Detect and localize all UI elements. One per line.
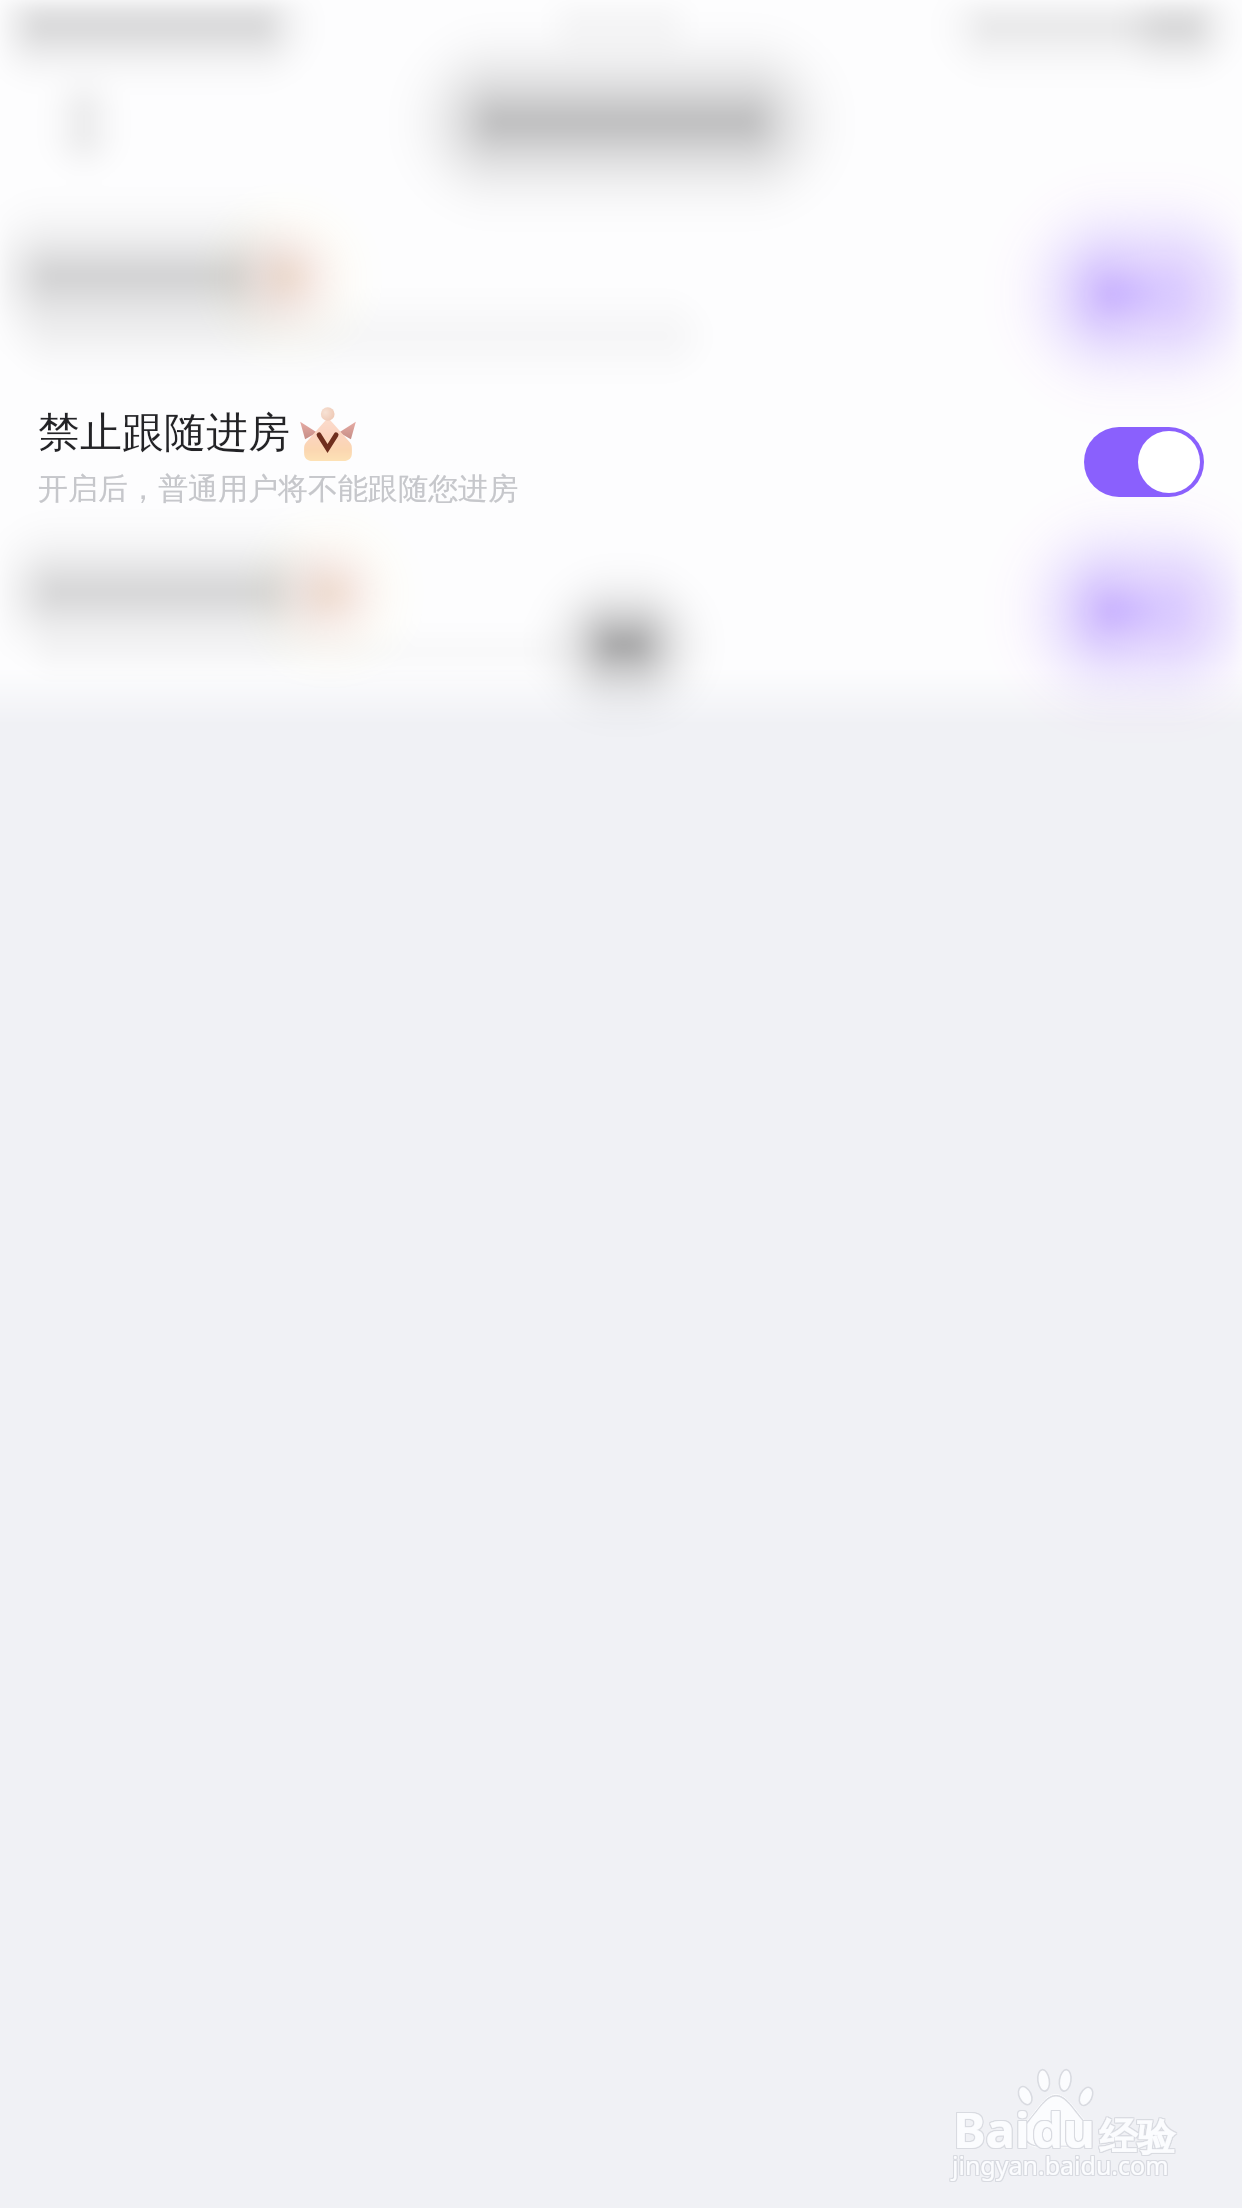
staticText: 经验 (1099, 2112, 1175, 2160)
staticText: Bai (953, 2097, 1030, 2164)
staticText: jingyan.baidu.com (953, 2148, 1170, 2182)
staticText: du (1032, 2097, 1095, 2164)
staticText: 经验 (1099, 2114, 1175, 2162)
staticText: 经验 (1100, 2113, 1176, 2161)
staticText: 禁止跟随进房 (38, 407, 290, 460)
staticText: Bai (952, 2096, 1029, 2163)
staticText: jingyan.baidu.com (952, 2149, 1169, 2183)
staticText: du (1032, 2096, 1095, 2163)
staticText: Bai (954, 2095, 1031, 2162)
staticText: 开启后，普通用户将不能跟随您进房 (38, 470, 518, 508)
staticText: Bai (952, 2095, 1029, 2162)
staticText: jingyan.baidu.com (953, 2149, 1170, 2183)
staticText: 经验 (1098, 2113, 1174, 2161)
staticText: du (1031, 2096, 1094, 2163)
button[interactable]: 禁止跟随进房 (0, 378, 1242, 526)
staticText: 经验 (1100, 2114, 1176, 2162)
staticText: du (1031, 2097, 1094, 2164)
staticText: du (1033, 2097, 1096, 2164)
staticText: jingyan.baidu.com (951, 2149, 1168, 2183)
staticText: 经验 (1100, 2112, 1176, 2160)
staticText: du (1033, 2096, 1096, 2163)
staticText: Bai (952, 2097, 1029, 2164)
staticText: jingyan.baidu.com (951, 2147, 1168, 2181)
staticText: Bai (954, 2097, 1031, 2164)
staticText: du (1032, 2095, 1095, 2162)
staticText: du (1031, 2095, 1094, 2162)
staticText: 经验 (1099, 2113, 1175, 2161)
staticText: jingyan.baidu.com (953, 2147, 1170, 2181)
button[interactable]: 禁止跟随进房开关 (1084, 427, 1204, 497)
staticText: Bai (953, 2095, 1030, 2162)
staticText: Bai (954, 2096, 1031, 2163)
staticText: 经验 (1098, 2114, 1174, 2162)
staticText: du (1033, 2095, 1096, 2162)
staticText: 经验 (1098, 2112, 1174, 2160)
staticText: Bai (953, 2096, 1030, 2163)
staticText: jingyan.baidu.com (951, 2148, 1168, 2182)
staticText: jingyan.baidu.com (952, 2147, 1169, 2181)
staticText: jingyan.baidu.com (952, 2148, 1169, 2182)
